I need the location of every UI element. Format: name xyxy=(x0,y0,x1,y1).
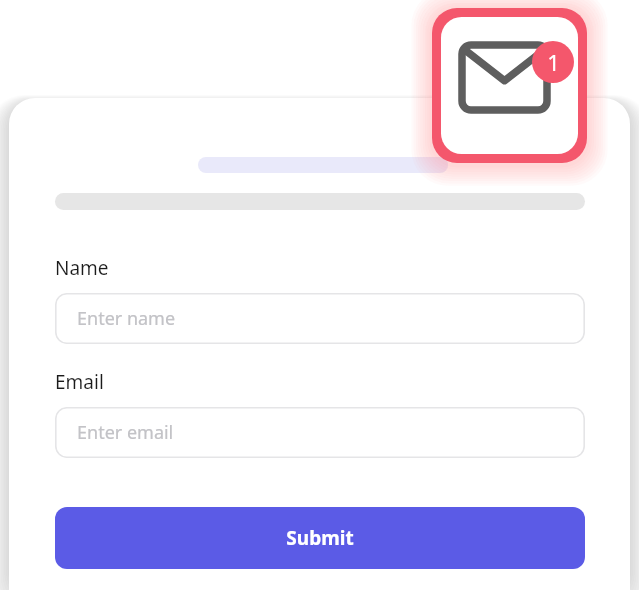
button[interactable]: Submit xyxy=(55,507,585,569)
staticText: 1 xyxy=(547,47,560,77)
staticText: Name xyxy=(55,255,109,281)
button[interactable]: Enter email xyxy=(55,407,585,458)
staticText: Enter email xyxy=(77,420,174,445)
staticText: Email xyxy=(55,369,104,395)
staticText: Enter name xyxy=(77,306,176,331)
staticText: Submit xyxy=(286,525,354,551)
button[interactable]: Enter name xyxy=(55,293,585,344)
button[interactable]: Messages, 1 unread xyxy=(432,8,587,163)
